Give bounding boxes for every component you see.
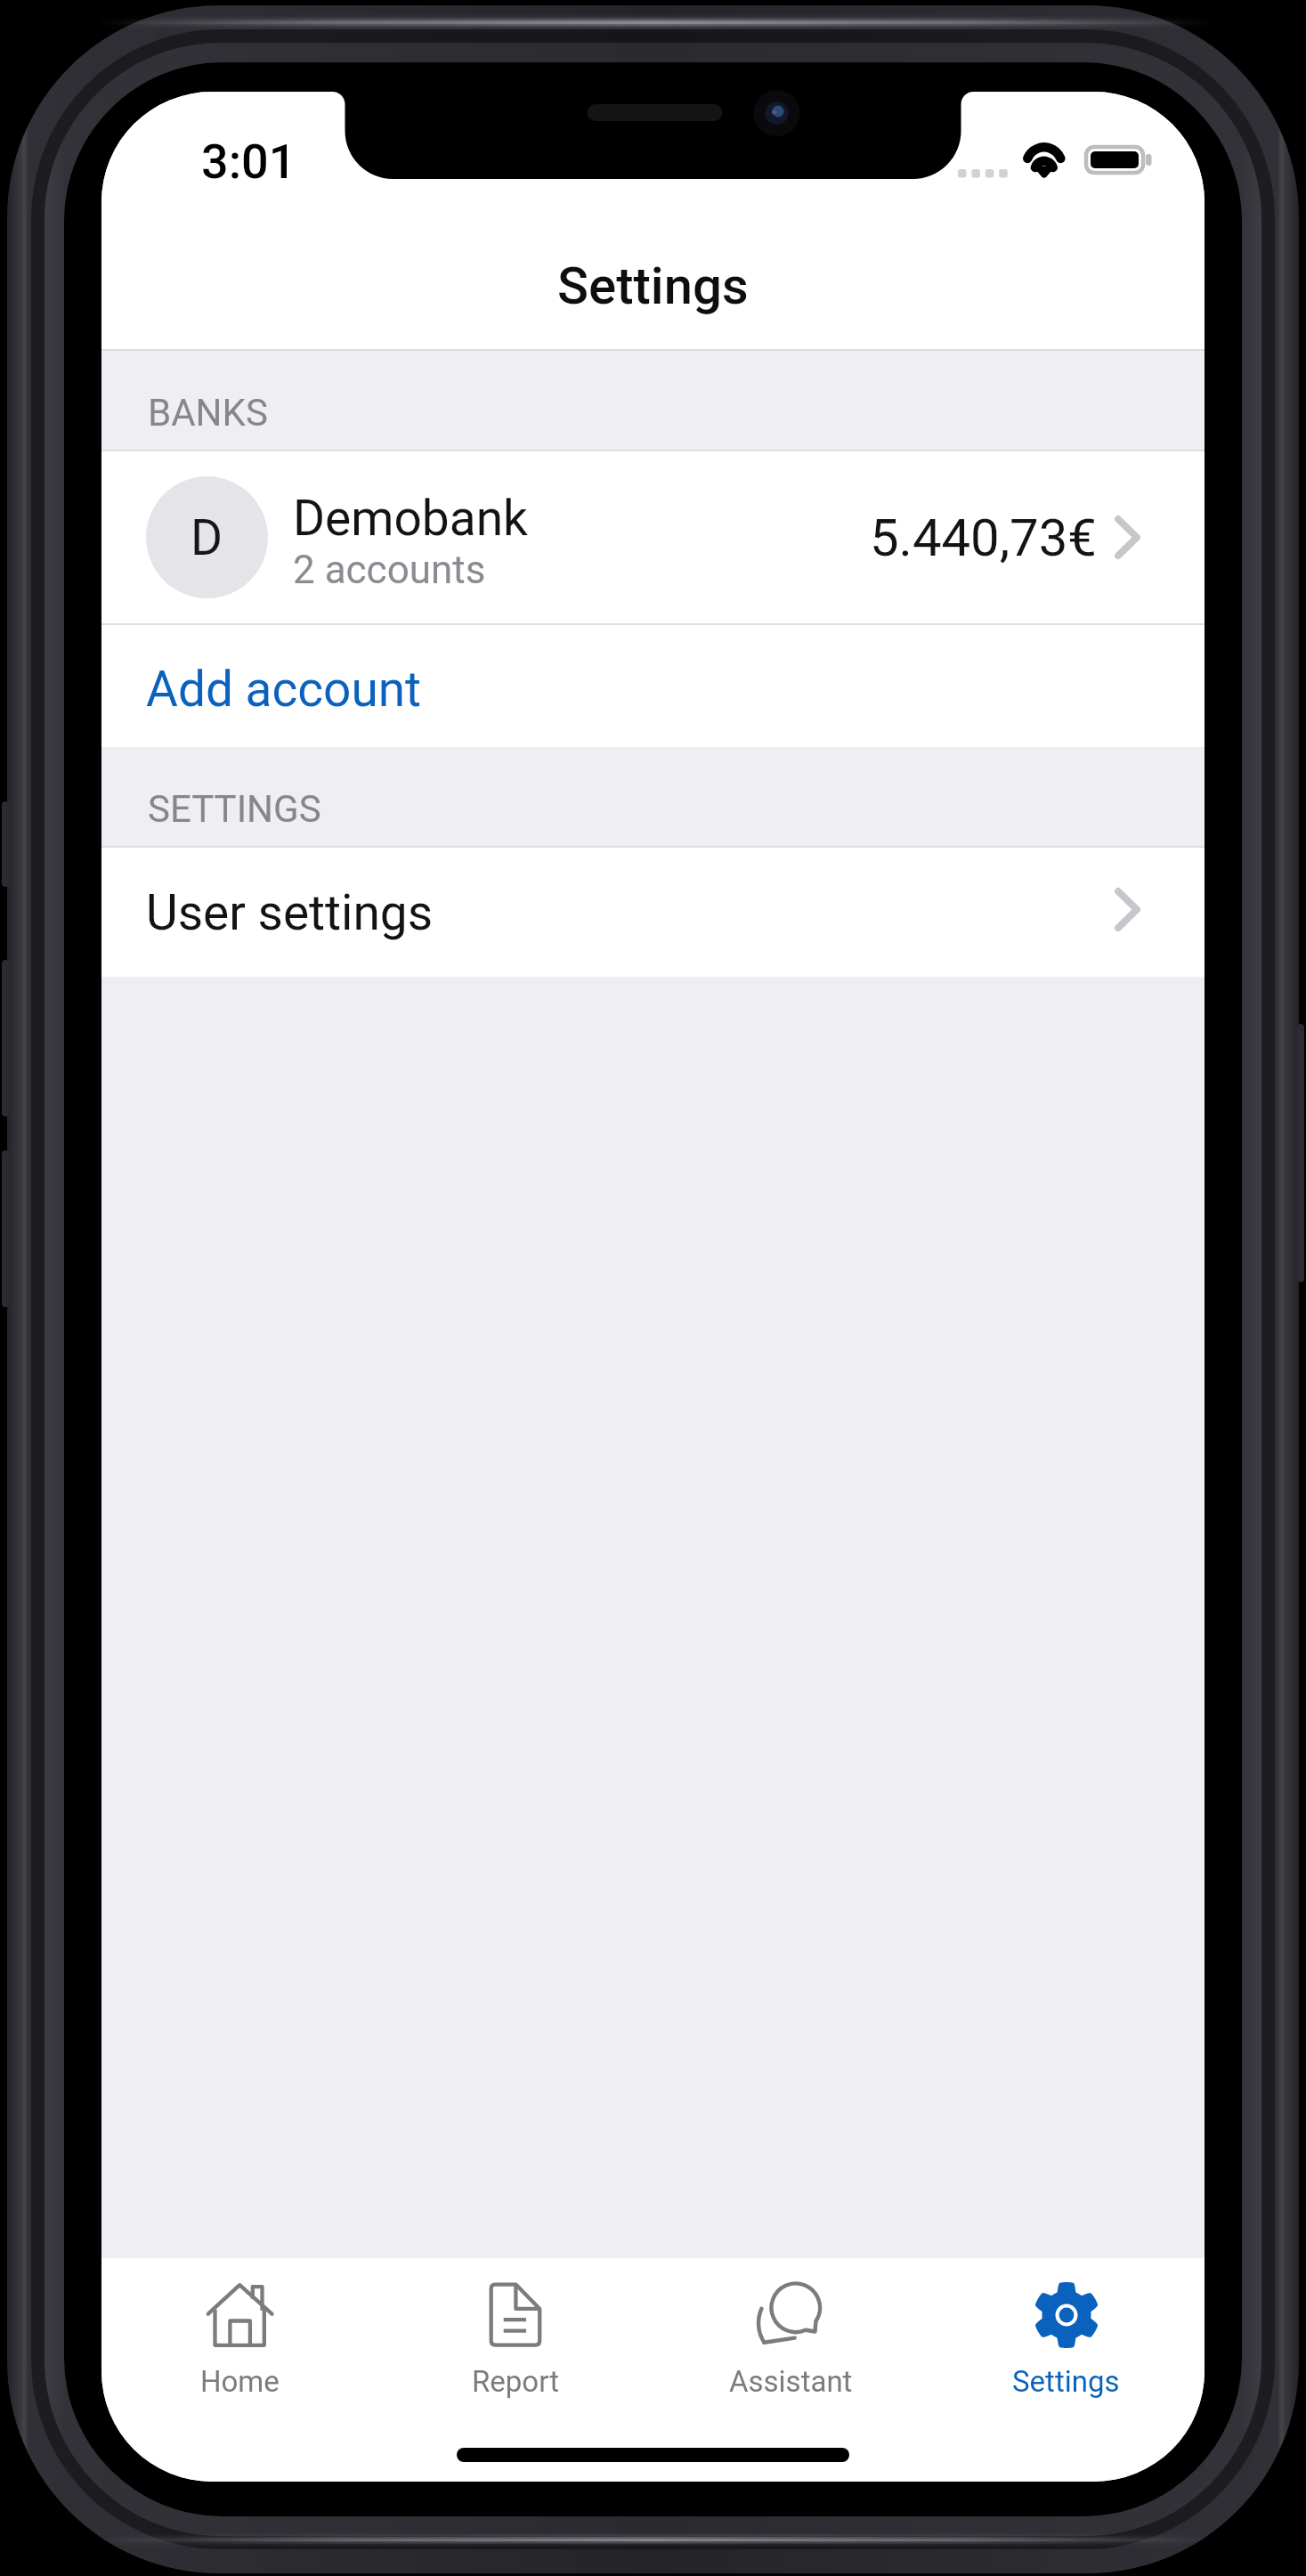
button[interactable]: Report bbox=[377, 2258, 653, 2427]
staticText: Settings bbox=[557, 256, 749, 316]
staticText: Add account bbox=[146, 661, 422, 718]
staticText: BANKS bbox=[148, 391, 268, 435]
button[interactable]: D bbox=[101, 451, 1205, 623]
staticText: Settings bbox=[1012, 2364, 1120, 2399]
button[interactable]: Add account bbox=[101, 625, 1205, 747]
staticText: D bbox=[191, 509, 223, 566]
button[interactable]: Settings bbox=[929, 2258, 1204, 2427]
staticText: Demobank bbox=[293, 490, 528, 547]
staticText: Assistant bbox=[729, 2364, 853, 2399]
button[interactable]: Assistant bbox=[653, 2258, 929, 2427]
button[interactable]: User settings bbox=[101, 848, 1205, 977]
staticText: Home bbox=[200, 2364, 280, 2399]
staticText: 5.440,73€ bbox=[870, 508, 1097, 568]
button[interactable]: Home bbox=[102, 2258, 377, 2427]
staticText: 3:01 bbox=[201, 134, 296, 190]
staticText: Report bbox=[472, 2364, 559, 2399]
staticText: SETTINGS bbox=[148, 787, 321, 831]
staticText: 2 accounts bbox=[293, 547, 486, 593]
staticText: User settings bbox=[146, 884, 434, 941]
